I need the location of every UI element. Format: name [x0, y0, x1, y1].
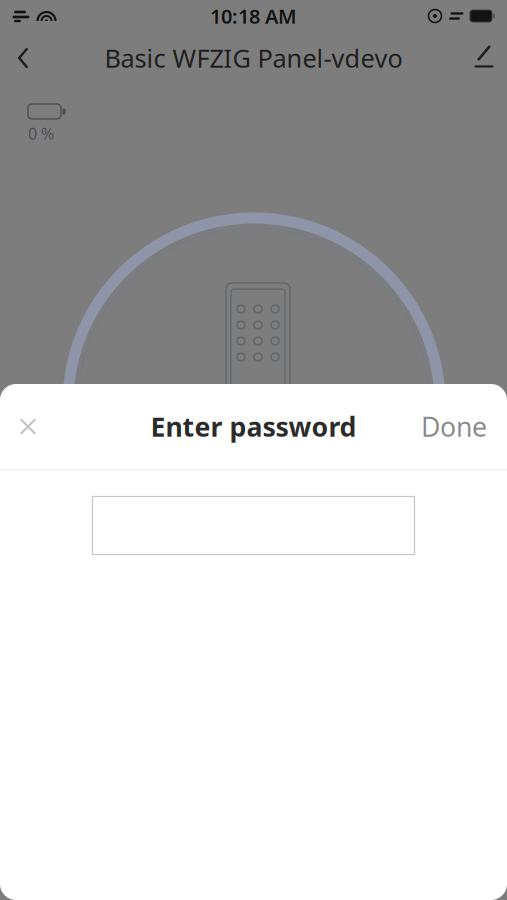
- staticText: 10:18 AM: [210, 3, 297, 29]
- button[interactable]: Password field: [92, 496, 414, 554]
- staticText: 0 %: [28, 123, 54, 144]
- button[interactable]: Close: [0, 396, 56, 456]
- staticText: Done: [421, 409, 487, 444]
- staticText: Enter password: [150, 409, 356, 444]
- button[interactable]: Back: [0, 36, 46, 80]
- button[interactable]: Edit: [461, 36, 507, 80]
- staticText: Basic WFZIG Panel-vdevo: [104, 41, 402, 75]
- button[interactable]: Done: [401, 396, 507, 456]
